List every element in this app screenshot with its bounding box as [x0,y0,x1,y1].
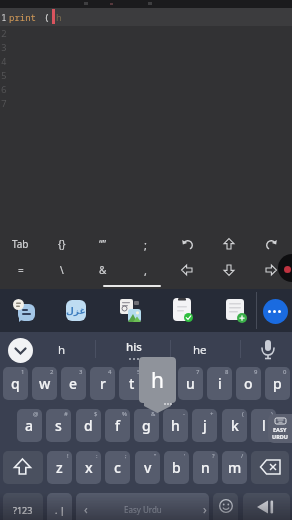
staticText: / [241,452,244,460]
staticText: 2 [1,27,7,40]
button[interactable] [226,299,244,320]
button[interactable]: Easy Urdu [76,493,209,520]
button[interactable] [263,299,288,324]
button[interactable] [208,260,250,280]
staticText: Easy Urdu [124,504,162,515]
staticText: 4 [108,368,112,376]
button[interactable]: Tab [0,234,41,254]
staticText: : [96,452,98,460]
button[interactable]: غزل [66,300,86,321]
button[interactable]: x [76,451,101,484]
button[interactable]: g [134,409,159,442]
staticText: ( [242,410,244,418]
button[interactable] [18,304,35,321]
button[interactable]: v [135,451,160,484]
staticText: y [158,374,166,393]
button[interactable]: k [222,409,247,442]
button[interactable]: s [46,409,71,442]
staticText: f [115,416,120,435]
button[interactable] [166,260,208,280]
button[interactable]: m [222,451,247,484]
staticText: h [151,366,164,395]
button[interactable]: & [82,260,124,280]
staticText: print [9,11,37,23]
button[interactable]: c [105,451,130,484]
button[interactable]: . | [47,493,72,520]
button[interactable] [8,338,33,363]
button[interactable]: \ [41,260,82,280]
button[interactable] [250,234,292,254]
staticText: 5 [1,69,7,82]
button[interactable] [166,234,208,254]
button[interactable]: , [124,260,166,280]
button[interactable]: h [163,409,188,442]
staticText: " [154,452,157,460]
button[interactable]: o [236,367,261,400]
button[interactable] [260,339,276,361]
staticText: a [25,416,34,435]
button[interactable]: t [119,367,144,400]
button[interactable]: q [3,367,28,400]
staticText: 7 [1,97,7,110]
staticText: o [244,374,253,393]
button[interactable]: p [265,367,290,400]
button[interactable]: b [164,451,189,484]
staticText: ; [144,237,147,252]
staticText: l [262,416,266,435]
button[interactable]: e [61,367,86,400]
button[interactable] [251,451,289,484]
staticText: . | [55,504,65,516]
staticText: he [193,342,207,358]
staticText: t [129,374,135,393]
button[interactable]: ; [124,234,166,254]
staticText: 1 [21,368,25,376]
staticText: + [210,410,214,418]
button[interactable]: z [47,451,72,484]
staticText: b [172,458,181,477]
button[interactable] [250,260,292,280]
button[interactable]: w [32,367,57,400]
button[interactable] [278,254,292,282]
button[interactable]: n [193,451,218,484]
staticText: \ [60,263,64,277]
button[interactable]: l [251,409,276,442]
button[interactable] [208,234,250,254]
button[interactable] [213,493,238,520]
button[interactable]: r [90,367,115,400]
button[interactable] [173,298,191,321]
button[interactable]: a [17,409,42,442]
button[interactable]: = [0,260,41,280]
button[interactable]: u [178,367,203,400]
staticText: “” [99,237,107,251]
staticText: 1 [1,11,7,24]
staticText: ‹ [84,501,88,517]
staticText: غزل [66,306,86,316]
staticText: 6 [1,83,7,96]
button[interactable] [243,493,290,520]
staticText: Tab [12,237,29,251]
staticText: w [39,374,51,393]
button[interactable]: {} [41,234,82,254]
staticText: m [228,458,242,477]
staticText: u [186,374,195,393]
staticText: = [18,263,24,277]
staticText: q [11,374,20,393]
button[interactable]: j [192,409,217,442]
staticText: i [218,374,222,393]
button[interactable] [3,451,43,484]
button[interactable]: y [149,367,174,400]
staticText: @ [33,410,39,418]
staticText: {} [58,237,66,251]
button[interactable]: i [207,367,232,400]
staticText: › [203,501,207,517]
button[interactable]: d [76,409,101,442]
staticText: n [201,458,210,477]
staticText: # [64,410,68,418]
staticText: ( [44,11,50,24]
button[interactable]: ?123 [3,493,43,520]
button[interactable]: “” [82,234,124,254]
staticText: ) [271,410,273,418]
button[interactable]: f [105,409,130,442]
staticText: x [85,458,93,477]
